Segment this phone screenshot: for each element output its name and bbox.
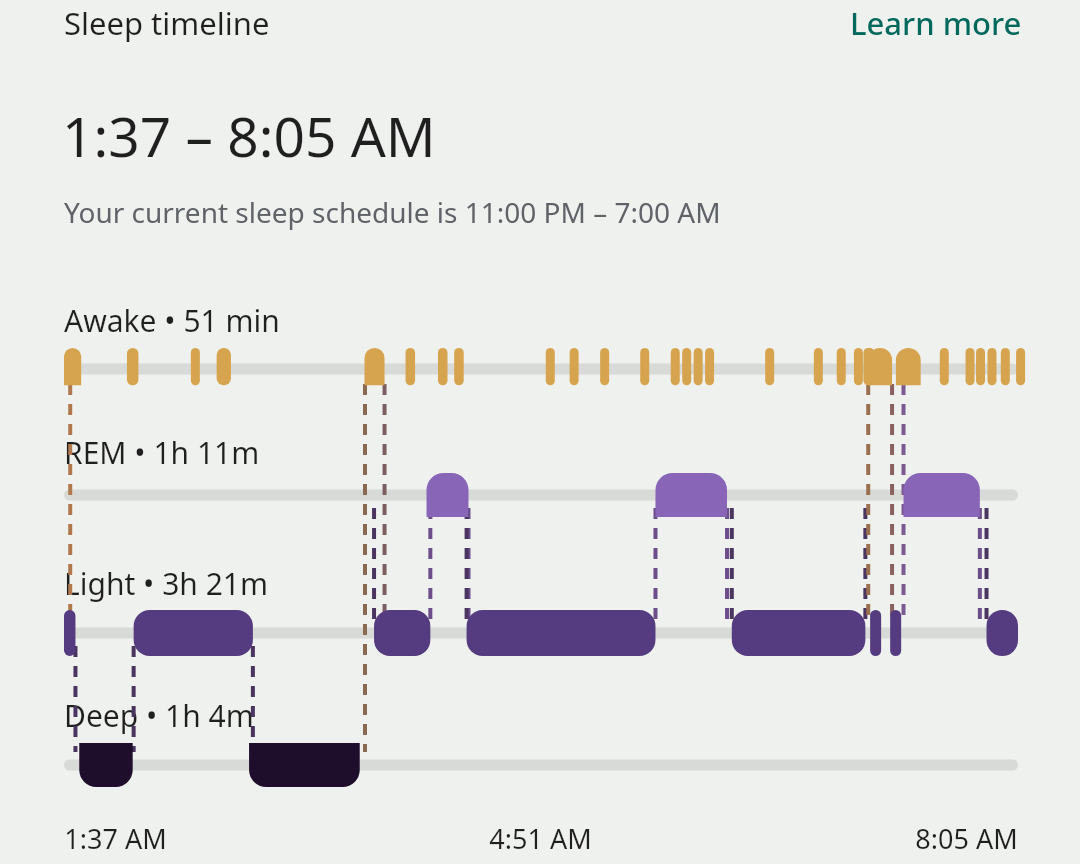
- staticText: 8:05 AM: [915, 820, 1018, 857]
- staticText: 4:51 AM: [489, 820, 592, 857]
- staticText: REM • 1h 11m: [64, 432, 260, 473]
- staticText: Light • 3h 21m: [64, 563, 269, 604]
- staticText: Learn more: [850, 2, 1022, 44]
- staticText: Sleep timeline: [64, 2, 270, 44]
- staticText: Deep • 1h 4m: [64, 695, 254, 736]
- button[interactable]: Learn more: [850, 2, 1022, 44]
- staticText: 1:37 – 8:05 AM: [62, 98, 436, 173]
- staticText: 1:37 AM: [64, 820, 167, 857]
- staticText: Your current sleep schedule is 11:00 PM …: [64, 193, 721, 231]
- staticText: Awake • 51 min: [64, 300, 280, 341]
